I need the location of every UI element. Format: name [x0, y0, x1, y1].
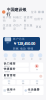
staticText: 转账汇款 — [13, 16, 22, 22]
button[interactable]: 更多 — [33, 25, 44, 29]
staticText: 申请办理 — [7, 91, 11, 93]
staticText: 网点 — [8, 83, 10, 84]
staticText: 财富管理 — [4, 74, 16, 77]
button[interactable]: 贷款服务 — [23, 24, 33, 30]
button[interactable]: Scan code — [38, 11, 40, 13]
button[interactable]: 信用卡 — [33, 17, 44, 21]
staticText: 投资理财 — [24, 16, 33, 22]
staticText: 登录 — [31, 10, 37, 14]
button[interactable]: 网点 — [2, 80, 15, 84]
staticText: 收款 — [20, 47, 26, 50]
staticText: 水电燃气 — [28, 91, 32, 93]
staticText: 转账 — [5, 58, 7, 60]
button[interactable]: 投资理财 — [23, 16, 33, 22]
button[interactable]: 更多 — [31, 80, 43, 84]
staticText: 精选理财产品 — [4, 66, 10, 67]
staticText: 缴费 — [39, 58, 41, 60]
staticText: 信用卡 — [34, 17, 43, 21]
staticText: 贷款服务 — [24, 24, 33, 30]
staticText: 快捷服务 — [4, 67, 16, 71]
staticText: 更多 — [36, 25, 42, 29]
staticText: ￥128,450.00 — [13, 41, 35, 46]
staticText: 生活缴费 — [28, 88, 40, 91]
button[interactable]: 快捷服务 — [3, 68, 29, 72]
staticText: 账户总览 — [13, 37, 25, 40]
button[interactable]: 生活缴费 — [24, 86, 43, 95]
button[interactable]: 信用卡 — [19, 53, 27, 60]
button[interactable]: Bank logo — [2, 10, 5, 14]
button[interactable]: 转账汇款 — [12, 16, 23, 22]
staticText: 信用卡 — [7, 88, 16, 91]
staticText: 查询 — [13, 58, 15, 60]
staticText: 信用卡 — [21, 58, 24, 60]
staticText: 明细 — [27, 47, 33, 50]
staticText: 转账 — [13, 47, 19, 50]
staticText: 理财 — [31, 58, 33, 60]
staticText: 存款产品 — [13, 24, 22, 30]
button[interactable]: 热门推荐 — [3, 62, 29, 67]
button[interactable]: 查询 — [10, 53, 19, 60]
staticText: 热门推荐 — [4, 62, 16, 65]
staticText: 生活缴费 — [3, 24, 12, 30]
staticText: 储蓄卡 — [6, 42, 9, 44]
staticText: 稳健收益 长期持有 — [4, 77, 12, 79]
button[interactable]: 理财 — [27, 53, 36, 60]
button[interactable]: 存款产品 — [12, 24, 23, 30]
button[interactable]: 信用卡 — [2, 86, 22, 95]
button[interactable]: 登录 — [31, 10, 37, 14]
staticText: 一键办理业务 — [4, 71, 10, 72]
button[interactable]: Promotion banner — [30, 62, 43, 72]
button[interactable]: 生活缴费 — [2, 24, 12, 30]
button[interactable]: 转账 — [1, 53, 10, 60]
button[interactable]: 财富管理 — [2, 73, 43, 79]
button[interactable]: 缴费 — [36, 53, 44, 60]
staticText: 账户查询 — [3, 16, 12, 22]
staticText: 中国建设银行 — [6, 7, 26, 17]
button[interactable]: 账户查询 — [2, 16, 12, 22]
button[interactable]: 客服 — [16, 80, 29, 84]
button[interactable]: 储蓄卡 — [3, 37, 40, 50]
